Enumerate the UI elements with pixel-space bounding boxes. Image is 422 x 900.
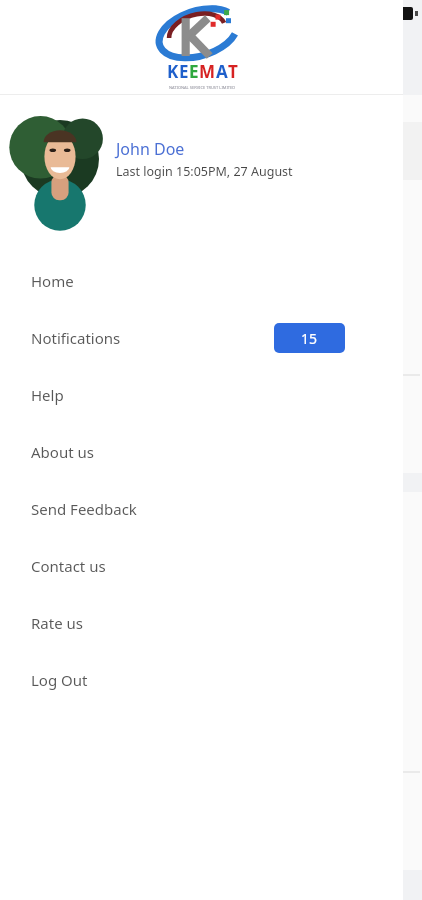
staticText: E: [179, 60, 189, 83]
button[interactable]: Rate us: [0, 594, 403, 651]
staticText: Help: [31, 385, 64, 405]
button[interactable]: Notifications: [367, 46, 407, 86]
button[interactable]: Contact us: [0, 537, 403, 594]
staticText: About us: [31, 442, 94, 462]
staticText: T: [228, 60, 238, 83]
staticText: K: [167, 60, 179, 83]
button[interactable]: John Doe: [0, 95, 403, 223]
staticText: NATIONAL SERVICE TRUST LIMITED: [169, 85, 236, 90]
staticText: 15: [301, 329, 318, 348]
staticText: Last login 15:05PM, 27 August: [116, 163, 293, 180]
staticText: Log Out: [31, 670, 88, 690]
staticText: Rate us: [31, 613, 83, 633]
button[interactable]: Send Feedback: [0, 480, 403, 537]
staticText: E: [189, 60, 199, 83]
staticText: Send Feedback: [31, 499, 137, 519]
staticText: John Doe: [116, 138, 185, 160]
staticText: Home: [31, 271, 74, 291]
staticText: Notifications: [31, 328, 121, 348]
button[interactable]: Log Out: [0, 651, 403, 708]
button[interactable]: Help: [0, 366, 403, 423]
staticText: A: [216, 60, 228, 83]
button[interactable]: About us: [0, 423, 403, 480]
button[interactable]: Notifications: [0, 309, 403, 366]
button[interactable]: Home: [0, 252, 403, 309]
staticText: M: [199, 60, 216, 83]
staticText: Contact us: [31, 556, 106, 576]
